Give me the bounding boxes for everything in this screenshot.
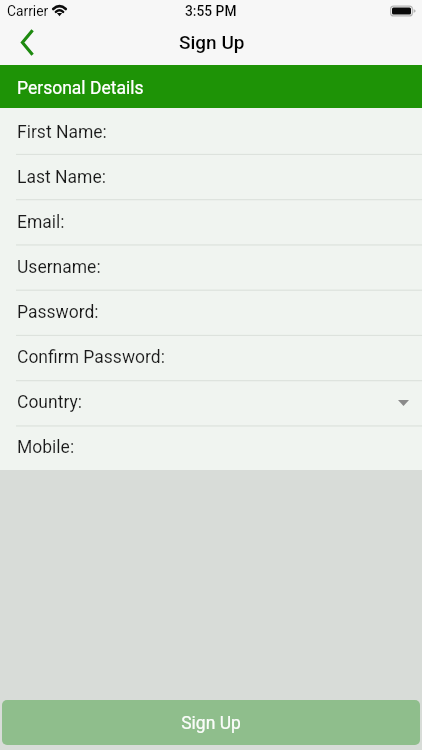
button[interactable]: Username: — [0, 243, 422, 288]
staticText: Sign Up — [181, 713, 241, 734]
button[interactable]: First Name: — [0, 108, 422, 153]
button[interactable]: Confirm Password: — [0, 333, 422, 378]
button[interactable]: Mobile: — [0, 423, 422, 468]
button[interactable]: Password: — [0, 288, 422, 333]
button[interactable]: Country: — [0, 378, 422, 423]
staticText: Email: — [17, 212, 65, 233]
button[interactable]: Email: — [0, 198, 422, 243]
staticText: Carrier — [7, 3, 49, 19]
staticText: First Name: — [17, 122, 107, 143]
button[interactable]: Last Name: — [0, 153, 422, 198]
staticText: Username: — [17, 257, 101, 278]
button[interactable]: Sign Up — [2, 700, 420, 745]
staticText: Last Name: — [17, 167, 106, 188]
staticText: 3:55 PM — [185, 3, 237, 19]
staticText: Sign Up — [179, 31, 245, 53]
staticText: Confirm Password: — [17, 347, 165, 368]
staticText: Mobile: — [17, 437, 75, 458]
button[interactable]: Back — [12, 26, 46, 60]
staticText: Personal Details — [17, 78, 144, 99]
staticText: Country: — [17, 392, 83, 413]
staticText: Password: — [17, 302, 99, 323]
